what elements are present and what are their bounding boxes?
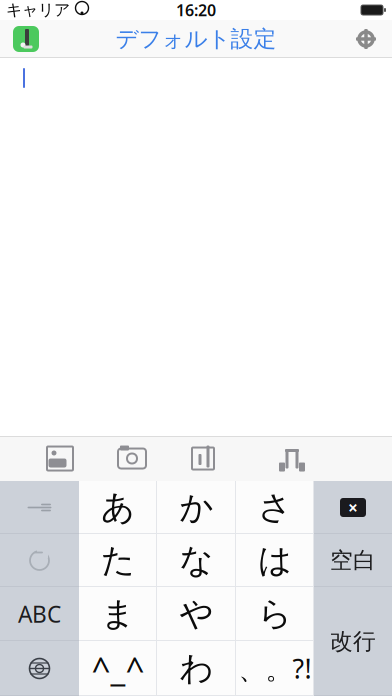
staticText: ら [258,593,292,634]
button[interactable]: 、。?! [236,641,314,696]
button[interactable]: カメラ [108,436,156,480]
button[interactable]: ホーム [268,436,316,480]
staticText: × [348,496,358,519]
button[interactable]: 空白 [314,534,392,587]
staticText: ^_^ [91,646,144,691]
staticText: ABC [18,599,61,629]
button[interactable]: ま [79,587,157,641]
button[interactable]: メモ [0,20,52,58]
button[interactable]: チェックリスト [179,436,227,480]
staticText: 空白 [330,547,376,574]
button[interactable]: 設定 [340,20,392,58]
staticText: あ [101,487,135,528]
button[interactable]: わ [157,641,236,696]
staticText: ま [101,593,135,634]
button[interactable]: 改行 [314,587,392,696]
staticText: 、。?! [238,651,311,686]
button[interactable]: あ [79,481,157,534]
button[interactable]: 取り消し [0,534,79,587]
button[interactable]: か [157,481,236,534]
staticText: や [179,593,213,634]
staticText: さ [258,487,292,528]
staticText: わ [179,648,213,689]
button[interactable]: な [157,534,236,587]
staticText: た [101,540,135,581]
button[interactable]: 削除 [314,481,392,534]
button[interactable]: た [79,534,157,587]
button[interactable]: 写真 [36,436,84,480]
button[interactable]: 次候補 [0,481,79,534]
button[interactable]: は [236,534,314,587]
staticText: か [179,487,213,528]
button[interactable]: さ [236,481,314,534]
button[interactable]: デフォルト設定 [105,19,286,59]
button[interactable]: ^_^ [79,641,157,696]
staticText: な [179,540,213,581]
staticText: 改行 [330,628,376,655]
button[interactable]: ABC [0,587,79,641]
button[interactable]: キーボード切替 [0,641,79,696]
staticText: 16:20 [176,0,216,21]
staticText: デフォルト設定 [115,25,276,53]
button[interactable]: ら [236,587,314,641]
staticText: は [258,540,292,581]
button[interactable]: や [157,587,236,641]
staticText: キャリア [6,0,70,20]
